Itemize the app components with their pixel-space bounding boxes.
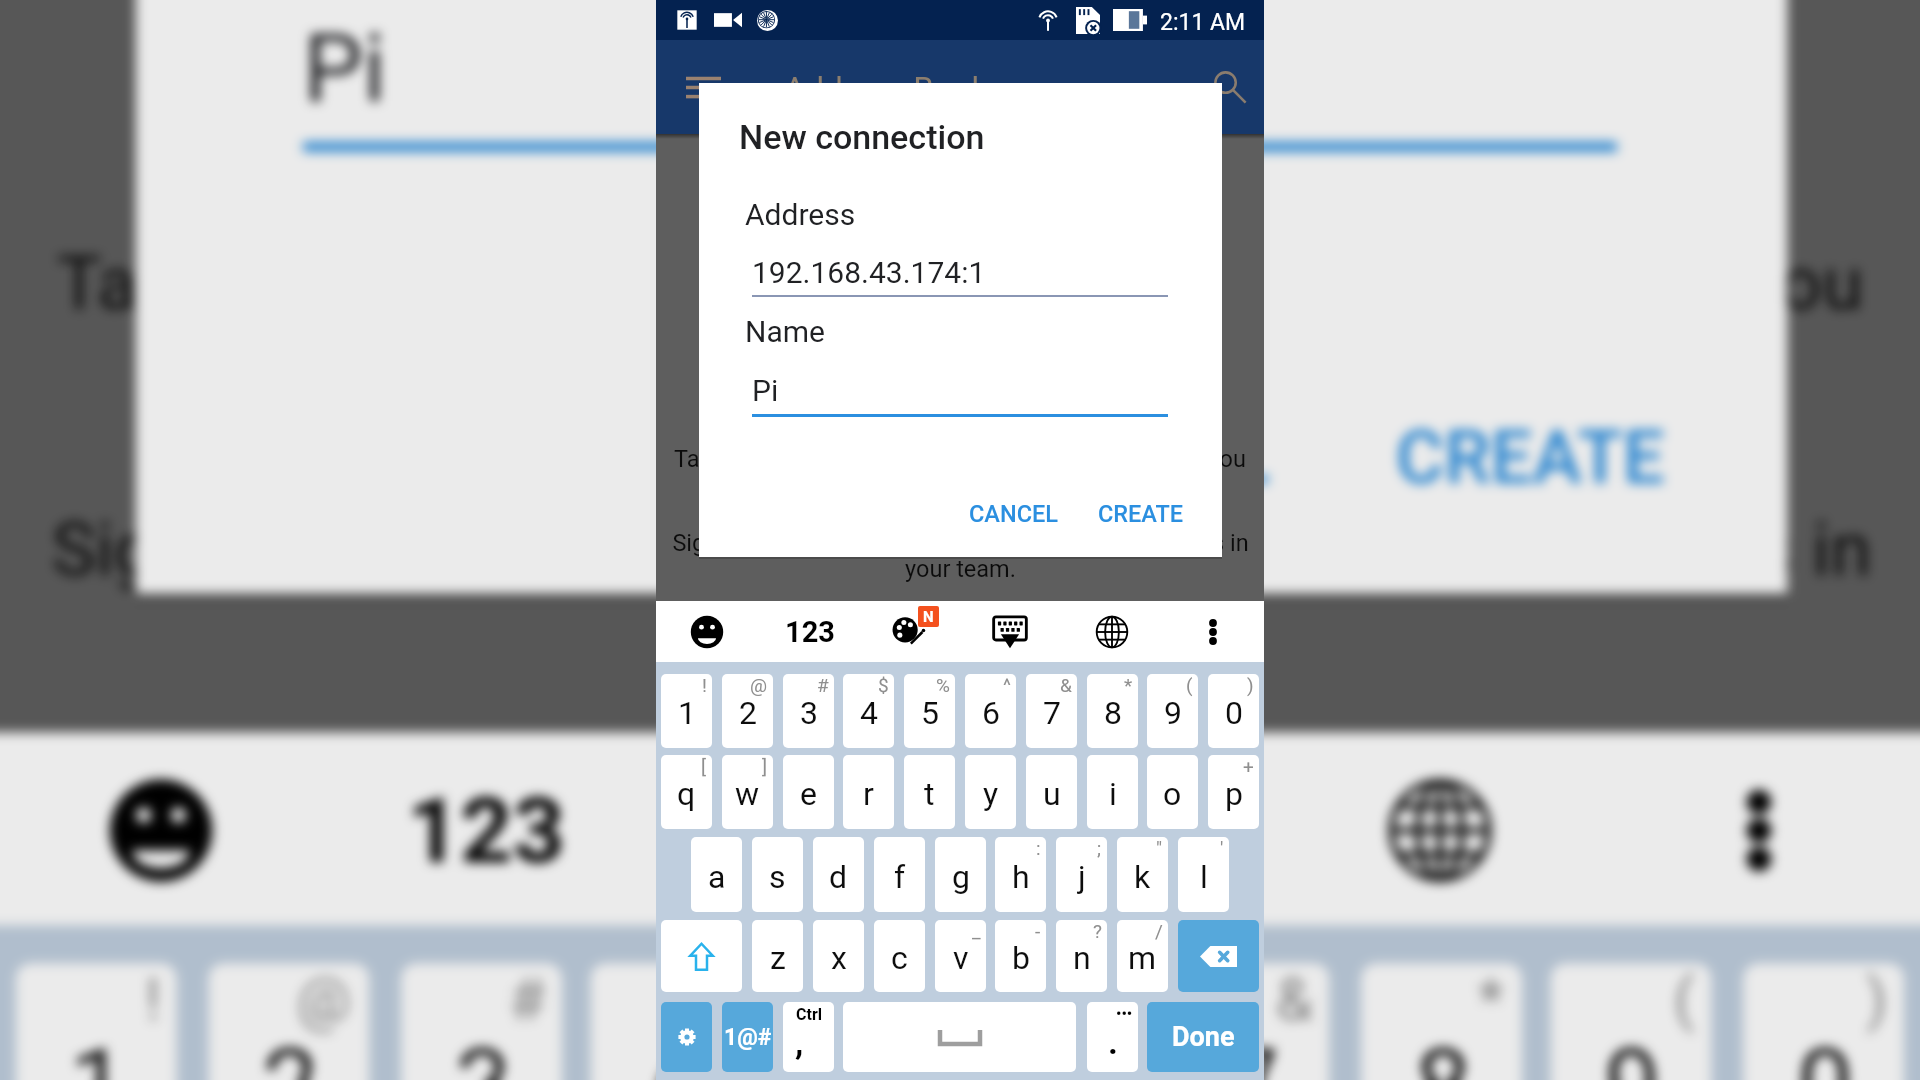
staticText: b xyxy=(1012,939,1030,977)
button[interactable]: & xyxy=(1168,963,1329,1080)
button[interactable]: o xyxy=(1147,755,1198,829)
button[interactable]: Period xyxy=(1087,1002,1138,1072)
button[interactable]: y xyxy=(965,755,1016,829)
button[interactable]: u xyxy=(1026,755,1077,829)
button[interactable]: r xyxy=(843,755,894,829)
button[interactable]: ; xyxy=(1056,837,1107,912)
staticText: s xyxy=(769,858,786,896)
button[interactable]: 123 xyxy=(784,612,836,652)
staticText: j xyxy=(1078,858,1086,896)
staticText: ] xyxy=(762,755,768,777)
button[interactable]: : xyxy=(995,837,1046,912)
button[interactable]: z xyxy=(752,920,803,992)
button[interactable]: 123 xyxy=(404,767,568,894)
button[interactable]: Shift xyxy=(661,920,742,992)
button[interactable]: Keyboard settings xyxy=(661,1002,712,1072)
button[interactable]: c xyxy=(874,920,925,992)
button[interactable]: ( xyxy=(1147,674,1198,748)
staticText: n xyxy=(1073,939,1091,977)
button[interactable]: & xyxy=(1026,674,1077,748)
button[interactable]: / xyxy=(1117,920,1168,992)
button[interactable]: ( xyxy=(1550,963,1712,1080)
button[interactable]: Comma xyxy=(783,1002,834,1072)
button[interactable]: [ xyxy=(661,755,712,829)
staticText: d xyxy=(829,858,848,896)
button[interactable]: CANCEL xyxy=(957,492,1071,536)
staticText: 2:11 AM xyxy=(1160,9,1246,36)
staticText: Tap + to add a new contact, or search fo… xyxy=(674,445,1246,473)
button[interactable]: % xyxy=(904,674,955,748)
button[interactable]: Emoji xyxy=(104,774,218,887)
button[interactable]: g xyxy=(935,837,986,912)
button[interactable]: x xyxy=(813,920,864,992)
button[interactable]: Open navigation menu xyxy=(686,70,721,105)
button[interactable]: CANCEL xyxy=(950,388,1310,527)
button[interactable]: t xyxy=(904,755,955,829)
button[interactable]: Hide keyboard xyxy=(991,613,1029,651)
staticText: N xyxy=(843,755,878,811)
button[interactable]: Emoji xyxy=(689,614,725,650)
button[interactable]: $ xyxy=(590,963,752,1080)
button[interactable]: e xyxy=(783,755,834,829)
button[interactable]: # xyxy=(401,963,562,1080)
button[interactable]: f xyxy=(874,837,925,912)
staticText: ) xyxy=(1866,963,1888,1033)
button[interactable]: Search xyxy=(1214,71,1248,105)
button[interactable]: # xyxy=(783,674,834,748)
button[interactable]: $ xyxy=(843,674,894,748)
button[interactable]: - xyxy=(995,920,1046,992)
button[interactable]: 1@# xyxy=(722,1002,773,1072)
staticText: N xyxy=(923,608,934,626)
button[interactable]: * xyxy=(1087,674,1138,748)
staticText: 9 xyxy=(1604,1026,1661,1080)
button[interactable]: Change language xyxy=(1386,777,1494,884)
staticText: t xyxy=(924,775,935,813)
staticText: 4 xyxy=(860,694,878,732)
button[interactable]: ) xyxy=(1208,674,1259,748)
button[interactable]: Change language xyxy=(1095,615,1129,649)
button[interactable]: ) xyxy=(1743,963,1904,1080)
button[interactable]: ^ xyxy=(976,963,1137,1080)
staticText: - xyxy=(1035,920,1041,942)
button[interactable]: Backspace xyxy=(1178,920,1259,992)
staticText: p xyxy=(1225,775,1243,813)
button[interactable]: Done xyxy=(1147,1002,1259,1072)
button[interactable]: ? xyxy=(1056,920,1107,992)
staticText: m xyxy=(1128,939,1157,977)
button[interactable]: ' xyxy=(1178,837,1229,912)
staticText: Sign in with Google to sync your contact… xyxy=(672,529,1249,582)
button[interactable]: ^ xyxy=(965,674,1016,748)
staticText: [ xyxy=(701,755,707,777)
button[interactable]: CREATE xyxy=(1358,388,1705,527)
button[interactable]: More options xyxy=(1198,617,1228,647)
staticText: 9 xyxy=(1164,694,1182,732)
button[interactable]: Space xyxy=(843,1002,1076,1072)
button[interactable]: _ xyxy=(935,920,986,992)
button[interactable]: d xyxy=(813,837,864,912)
button[interactable]: ! xyxy=(661,674,712,748)
button[interactable]: Theme xyxy=(739,774,853,887)
button[interactable]: + xyxy=(1208,755,1259,829)
button[interactable]: Hide keyboard xyxy=(1058,770,1178,890)
button[interactable]: CREATE xyxy=(1086,492,1196,536)
button[interactable]: More options xyxy=(1712,783,1806,878)
button[interactable]: * xyxy=(1361,963,1522,1080)
staticText: Pi xyxy=(752,373,779,408)
button[interactable]: ] xyxy=(722,755,773,829)
staticText: Pi xyxy=(303,13,388,123)
staticText: ) xyxy=(1247,674,1254,696)
button[interactable]: a xyxy=(691,837,742,912)
staticText: 1@# xyxy=(724,1024,772,1051)
staticText: " xyxy=(1156,837,1163,859)
button[interactable]: Theme xyxy=(890,614,926,650)
staticText: z xyxy=(770,939,786,977)
button[interactable]: " xyxy=(1117,837,1168,912)
staticText: r xyxy=(863,775,874,813)
button[interactable]: @ xyxy=(722,674,773,748)
button[interactable]: % xyxy=(783,963,944,1080)
button[interactable]: ! xyxy=(16,963,177,1080)
button[interactable]: i xyxy=(1087,755,1138,829)
staticText: 2 xyxy=(739,694,757,732)
button[interactable]: @ xyxy=(208,963,369,1080)
button[interactable]: s xyxy=(752,837,803,912)
